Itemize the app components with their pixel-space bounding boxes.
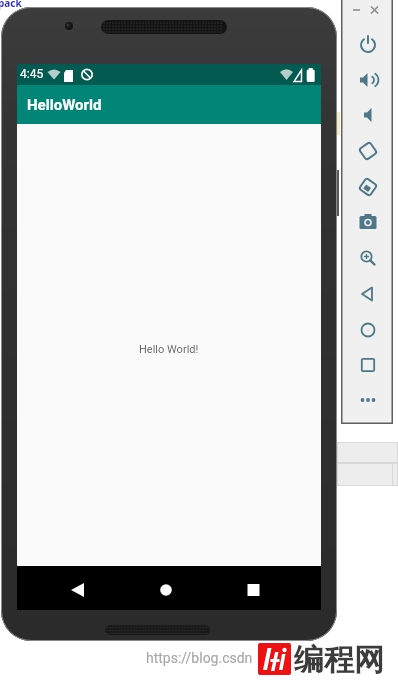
button[interactable] bbox=[258, 643, 291, 675]
button[interactable] bbox=[355, 387, 381, 413]
staticText: HelloWorld bbox=[27, 96, 102, 114]
staticText: https://blog.csdn bbox=[146, 650, 253, 666]
button[interactable] bbox=[355, 174, 381, 200]
button[interactable] bbox=[355, 32, 381, 58]
button[interactable] bbox=[355, 67, 381, 93]
button[interactable] bbox=[355, 317, 381, 343]
staticText: pack bbox=[0, 0, 22, 10]
staticText: Hello World! bbox=[139, 343, 199, 356]
button[interactable] bbox=[355, 352, 381, 378]
staticText: 编程网 bbox=[294, 641, 384, 679]
staticText: 4:45 bbox=[20, 67, 44, 81]
button[interactable] bbox=[355, 281, 381, 307]
button[interactable] bbox=[239, 576, 267, 604]
button[interactable] bbox=[355, 102, 381, 128]
button[interactable] bbox=[152, 576, 180, 604]
button[interactable] bbox=[63, 576, 91, 604]
button[interactable] bbox=[355, 209, 381, 235]
button[interactable] bbox=[355, 138, 381, 164]
button[interactable] bbox=[355, 245, 381, 271]
